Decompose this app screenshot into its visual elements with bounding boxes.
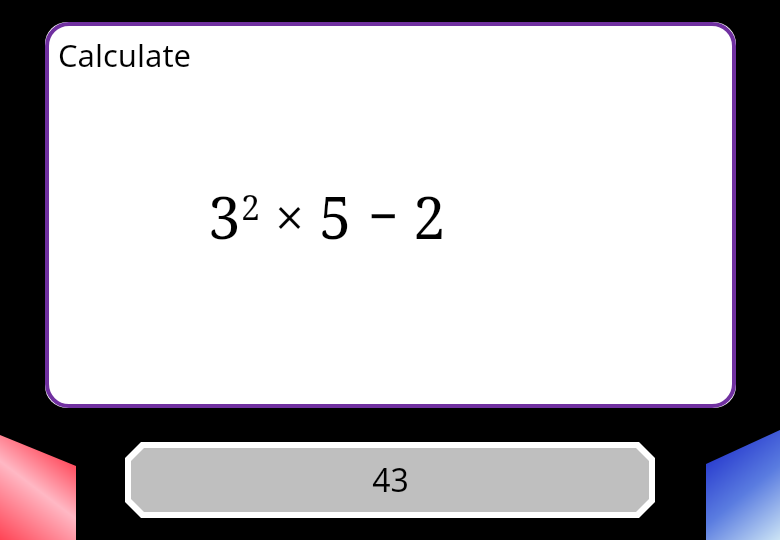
button[interactable]: Calculate — [45, 22, 736, 408]
staticText: 2 — [413, 177, 446, 256]
button[interactable]: Answer 43 — [125, 442, 655, 518]
staticText: 3 — [208, 177, 241, 256]
staticText: × — [275, 181, 305, 252]
staticText: Calculate — [58, 34, 192, 76]
staticText: 43 — [372, 458, 409, 502]
staticText: 2 — [241, 184, 261, 230]
staticText: 5 — [319, 177, 352, 256]
staticText: − — [368, 179, 399, 250]
